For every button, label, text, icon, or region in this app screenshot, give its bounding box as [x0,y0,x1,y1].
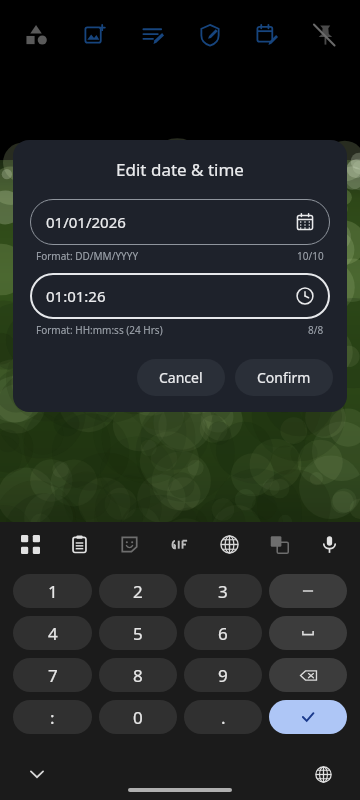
staticText: 8/8 [308,323,324,337]
button[interactable]: Unpin [295,11,352,59]
button[interactable]: Pick time [294,285,316,307]
button[interactable]: Stickers [104,524,154,564]
button[interactable]: Hide keyboard [22,759,52,789]
button[interactable]: Clipboard [55,524,104,564]
button[interactable]: GIF [154,524,204,564]
button[interactable]: 3 [184,574,262,608]
staticText: 5 [133,622,143,645]
button[interactable]: 4 [13,616,92,650]
staticText: 1 [48,580,58,603]
staticText: Confirm [257,368,311,387]
button[interactable]: 8 [99,658,177,692]
button[interactable]: Confirm [235,359,333,396]
button[interactable]: Translate [254,524,304,564]
button[interactable]: Add image [66,11,124,59]
button[interactable]: Enter [269,700,347,734]
button[interactable]: Shapes [8,11,66,59]
button[interactable]: 01:01:26 [30,273,330,319]
button[interactable]: Pick date [294,211,316,233]
button[interactable]: Change language [308,759,338,789]
button[interactable]: 01/01/2026 [30,199,330,245]
button[interactable]: Shield edit [181,11,238,59]
button[interactable]: Switch keyboard [6,524,55,564]
button[interactable]: Backspace [269,658,347,692]
button[interactable]: 2 [99,574,177,608]
button[interactable]: 5 [99,616,177,650]
button[interactable]: Edit text [124,11,181,59]
button[interactable]: 9 [184,658,262,692]
staticText: 9 [218,664,228,687]
staticText: 2 [133,580,143,603]
staticText: 0 [133,706,143,729]
staticText: Format: DD/MM/YYYY [36,249,139,263]
staticText: . [221,706,226,729]
button[interactable]: Space [269,616,347,650]
staticText: 01/01/2026 [46,212,126,232]
button[interactable]: Voice input [304,524,354,564]
button[interactable]: 6 [184,616,262,650]
button[interactable]: Cancel [137,359,225,396]
staticText: 4 [48,622,58,645]
button[interactable]: Edit calendar [238,11,295,59]
staticText: 7 [48,664,58,687]
button[interactable]: . [184,700,262,734]
staticText: Edit date & time [13,158,347,181]
staticText: 01:01:26 [46,286,106,306]
button[interactable]: 1 [13,574,92,608]
staticText: 8 [133,664,143,687]
staticText: 6 [218,622,228,645]
staticText: 10/10 [297,249,324,263]
staticText: 3 [218,580,228,603]
staticText: Format: HH:mm:ss (24 Hrs) [36,323,163,337]
staticText: : [50,706,55,729]
button[interactable]: Emoji [204,524,254,564]
staticText: Cancel [159,368,203,387]
button[interactable]: Dash [269,574,347,608]
button[interactable]: 0 [99,700,177,734]
button[interactable]: 7 [13,658,92,692]
button[interactable]: : [13,700,92,734]
